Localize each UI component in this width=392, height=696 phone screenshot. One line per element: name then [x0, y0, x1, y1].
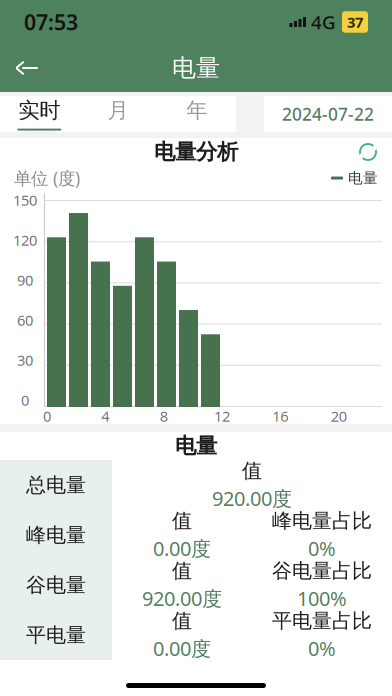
staticText: 20 [331, 406, 347, 426]
staticText: 平电量占比 [272, 608, 372, 633]
staticText: 0 [43, 406, 51, 426]
staticText: 30 [17, 350, 33, 370]
staticText: 07:53 [24, 8, 78, 36]
staticText: 电量 [172, 53, 220, 83]
staticText: 值 [172, 608, 192, 633]
button[interactable]: Back [6, 46, 50, 90]
staticText: 总电量 [26, 473, 86, 497]
staticText: 150 [13, 190, 37, 210]
button[interactable]: 月 [79, 96, 157, 132]
staticText: 谷电量占比 [272, 558, 372, 583]
staticText: 16 [272, 406, 288, 426]
staticText: 峰电量 [26, 523, 86, 547]
staticText: 值 [172, 508, 192, 533]
staticText: 120 [13, 230, 37, 250]
button[interactable]: 2024-07-22 [264, 96, 392, 132]
staticText: 实时 [18, 97, 60, 124]
staticText: 8 [160, 406, 168, 426]
staticText: 电量 [348, 169, 378, 187]
staticText: 37 [347, 12, 363, 32]
staticText: 0% [308, 635, 336, 662]
staticText: 12 [214, 406, 230, 426]
staticText: 100% [297, 585, 347, 612]
staticText: 电量分析 [154, 139, 238, 165]
staticText: 峰电量占比 [272, 508, 372, 533]
button[interactable]: 实时 [0, 96, 79, 132]
button[interactable]: 年 [157, 96, 236, 132]
staticText: 月 [107, 97, 128, 124]
staticText: 0% [308, 535, 336, 562]
staticText: 0.00度 [153, 535, 211, 562]
staticText: 0.00度 [153, 635, 211, 662]
staticText: 电量 [175, 433, 217, 459]
staticText: 值 [242, 458, 262, 483]
staticText: 2024-07-22 [282, 102, 374, 125]
staticText: 90 [17, 270, 33, 290]
staticText: 值 [172, 558, 192, 583]
staticText: 年 [186, 97, 207, 124]
staticText: 单位 (度) [14, 166, 80, 189]
staticText: 4 [101, 406, 109, 426]
staticText: 4G [311, 10, 336, 34]
button[interactable]: Refresh [358, 142, 378, 162]
staticText: 平电量 [26, 623, 86, 647]
staticText: 920.00度 [212, 485, 292, 512]
staticText: 60 [17, 310, 33, 330]
staticText: 谷电量 [26, 573, 86, 597]
staticText: 920.00度 [142, 585, 222, 612]
staticText: 0 [21, 390, 29, 410]
